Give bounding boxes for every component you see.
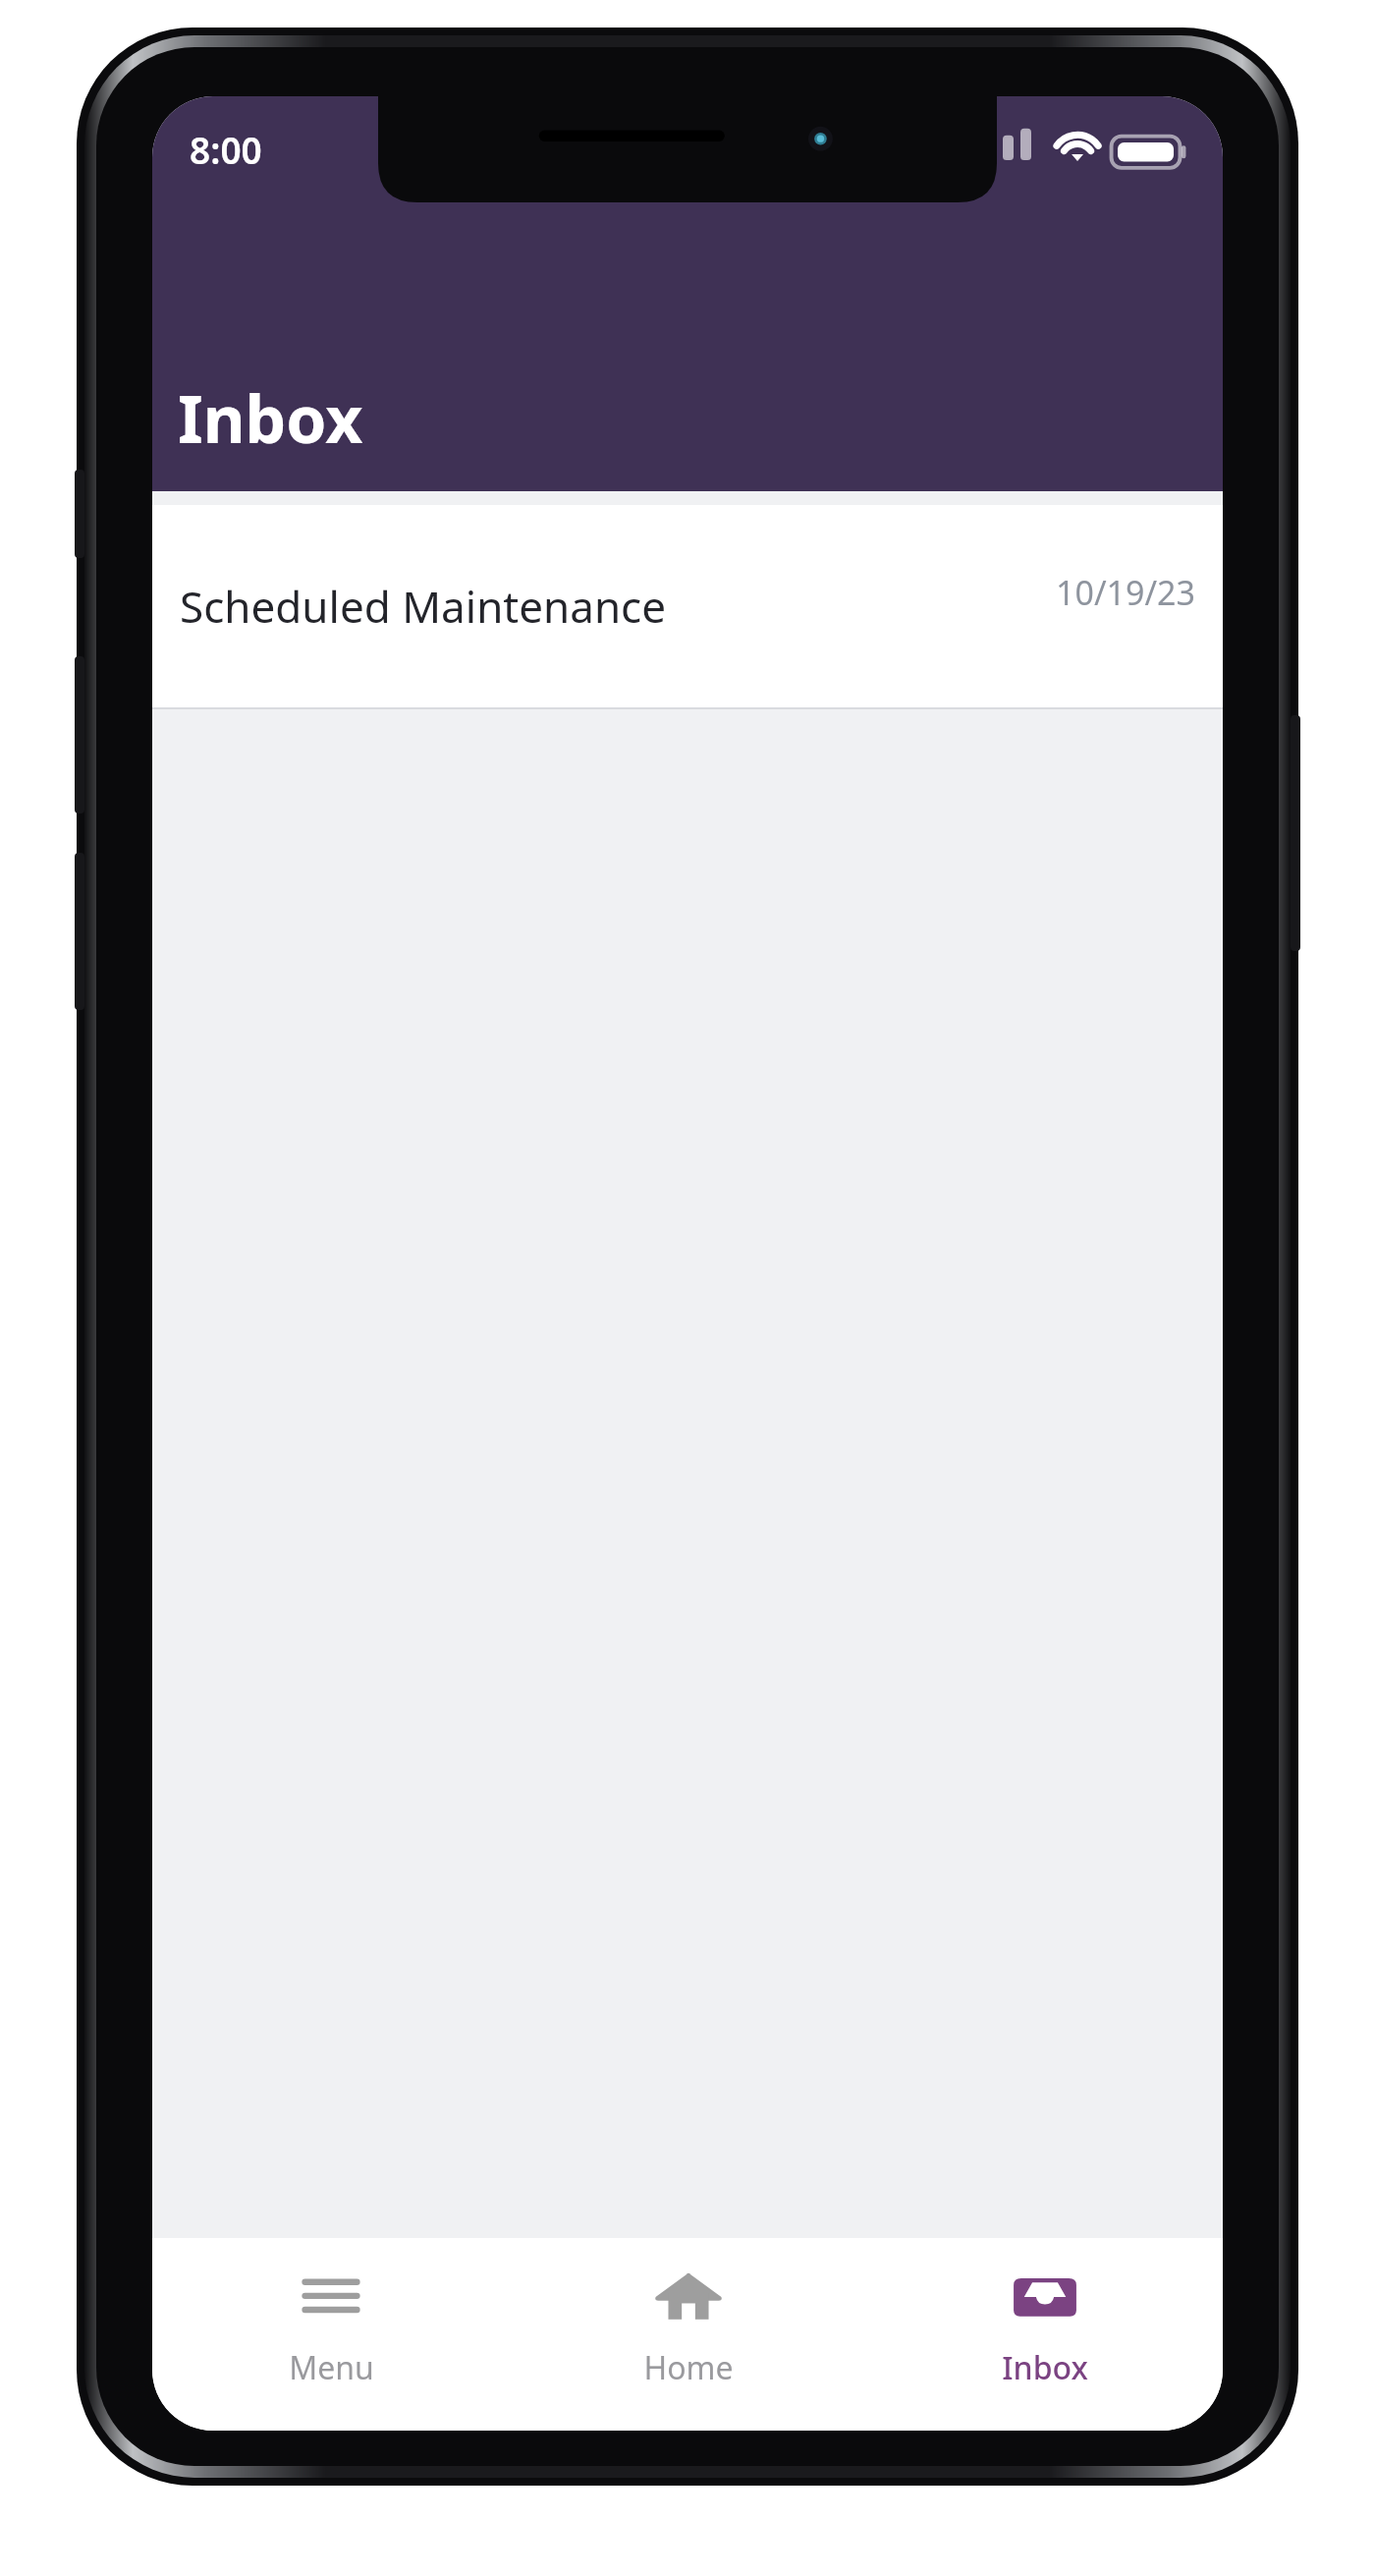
button[interactable]: Scheduled Maintenance bbox=[152, 505, 1223, 707]
staticText: Menu bbox=[289, 2346, 374, 2389]
staticText: 8:00 bbox=[190, 125, 262, 174]
button[interactable]: Home bbox=[510, 2238, 866, 2431]
staticText: Inbox bbox=[1002, 2346, 1088, 2389]
other: Menu bbox=[294, 2260, 368, 2334]
other: Inbox bbox=[1008, 2260, 1082, 2334]
staticText: Inbox bbox=[178, 373, 363, 462]
button[interactable]: Inbox bbox=[866, 2238, 1223, 2431]
staticText: Scheduled Maintenance bbox=[180, 577, 667, 636]
staticText: 10/19/23 bbox=[1056, 570, 1195, 615]
staticText: Home bbox=[643, 2346, 734, 2389]
button[interactable]: Menu bbox=[152, 2238, 510, 2431]
other: Home bbox=[651, 2260, 726, 2334]
